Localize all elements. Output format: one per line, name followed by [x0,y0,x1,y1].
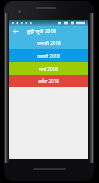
button[interactable]: फरवरी 2018 [9,49,88,62]
staticText: मार्च 2018 [39,66,58,72]
staticText: अप्रैल 2018 [38,78,59,84]
staticText: जनवरी 2018 [37,40,61,46]
button[interactable]: जनवरी 2018 [9,37,88,49]
staticText: फरवरी 2018 [37,53,60,59]
staticText: छुट्टी सूची 2018 [27,28,57,35]
button[interactable]: Back [9,26,22,37]
button[interactable]: मार्च 2018 [9,62,88,75]
button[interactable]: अप्रैल 2018 [9,75,88,87]
